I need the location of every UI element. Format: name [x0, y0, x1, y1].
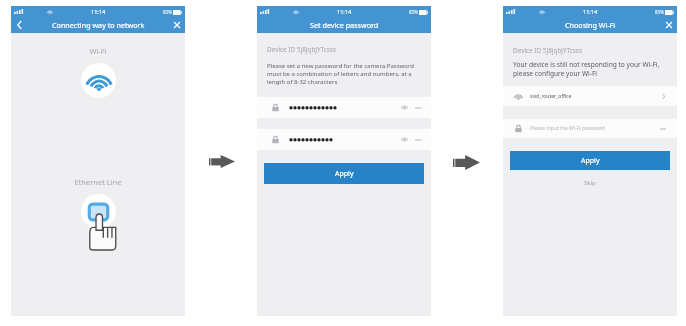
- staticText: 11:14: [337, 8, 352, 15]
- staticText: Ethernet Line: [11, 177, 185, 187]
- staticText: Please input the Wi-Fi password: [530, 125, 660, 132]
- button[interactable]: Please input the Wi-Fi password: [514, 119, 666, 138]
- button[interactable]: Connect via Wi-Fi: [81, 63, 116, 98]
- button[interactable]: Close: [169, 17, 185, 33]
- button[interactable]: Skip: [574, 177, 606, 189]
- staticText: ●●●●●●●●●●●: [289, 137, 401, 142]
- staticText: Please set a new password for the camera…: [267, 62, 428, 86]
- staticText: Your device is still not responding to y…: [513, 60, 667, 78]
- staticText: Connecting way to network: [52, 20, 145, 30]
- button[interactable]: Back: [11, 17, 27, 33]
- staticText: Set device password: [310, 20, 379, 30]
- staticText: 11:14: [583, 8, 598, 15]
- staticText: 11:14: [91, 8, 106, 15]
- staticText: ssid_router_office: [530, 93, 661, 100]
- staticText: Device ID 5j8jqbjYTcsss: [267, 45, 336, 54]
- button[interactable]: Apply: [264, 163, 424, 184]
- staticText: Apply: [581, 156, 600, 166]
- staticText: Wi-Fi: [11, 46, 185, 56]
- staticText: Apply: [335, 169, 354, 179]
- button[interactable]: Apply: [510, 151, 670, 170]
- button[interactable]: ssid_router_office: [514, 86, 666, 106]
- staticText: Choosing Wi-Fi: [565, 20, 616, 30]
- staticText: 83%: [409, 9, 418, 15]
- staticText: ●●●●●●●●●●●●: [289, 105, 401, 110]
- button[interactable]: Connect via Ethernet cable: [81, 194, 116, 229]
- staticText: 83%: [655, 9, 664, 15]
- staticText: Device ID 5j8jqbjYTcsss: [513, 46, 582, 55]
- staticText: 83%: [163, 9, 172, 15]
- button[interactable]: Close: [661, 17, 677, 33]
